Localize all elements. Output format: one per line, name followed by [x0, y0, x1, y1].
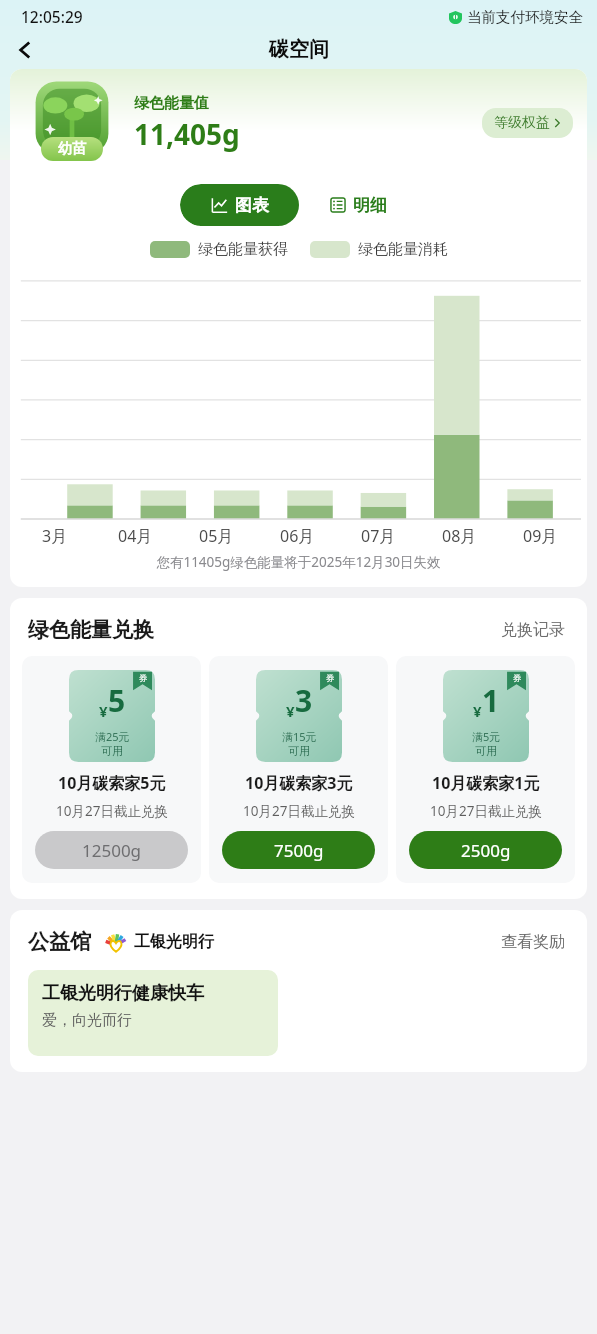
staticText: 您有11405g绿色能量将于2025年12月30日失效 — [10, 553, 587, 571]
staticText: 09月 — [523, 525, 558, 547]
button[interactable]: 7500g — [222, 831, 375, 869]
button[interactable]: 明细 — [299, 184, 418, 226]
staticText: 11,405g — [134, 115, 240, 153]
staticText: 可用 — [288, 744, 310, 758]
button[interactable]: 图表 — [180, 184, 299, 226]
staticText: 兑换记录 — [501, 620, 565, 640]
staticText: 10月27日截止兑换 — [56, 802, 168, 820]
button[interactable]: Back — [6, 33, 46, 66]
staticText: 1 — [482, 680, 500, 721]
button[interactable]: 等级权益 — [482, 108, 573, 138]
button[interactable]: ¥ — [22, 656, 201, 883]
staticText: 3 — [295, 680, 313, 721]
staticText: 图表 — [235, 195, 269, 216]
staticText: 券 — [139, 673, 148, 684]
button[interactable]: 2500g — [409, 831, 562, 869]
staticText: 3月 — [42, 525, 68, 547]
staticText: 满25元 — [95, 729, 130, 744]
staticText: 绿色能量值 — [134, 94, 209, 113]
staticText: 5 — [108, 680, 126, 721]
button[interactable]: 工银光明行健康快车 — [28, 970, 278, 1056]
staticText: 工银光明行 — [134, 932, 214, 952]
staticText: 10月碳索家5元 — [58, 772, 166, 794]
staticText: 绿色能量获得 — [198, 240, 288, 259]
staticText: 05月 — [199, 525, 234, 547]
staticText: 绿色能量消耗 — [358, 240, 448, 259]
staticText: 2500g — [461, 839, 511, 862]
staticText: 04月 — [118, 525, 153, 547]
staticText: ¥ — [473, 701, 482, 721]
staticText: 查看奖励 — [501, 932, 565, 952]
staticText: 满5元 — [472, 729, 501, 744]
staticText: 满15元 — [282, 729, 317, 744]
staticText: 10月碳索家3元 — [245, 772, 353, 794]
staticText: 可用 — [101, 744, 123, 758]
staticText: 12500g — [82, 839, 142, 862]
staticText: 工银光明行健康快车 — [42, 982, 204, 1005]
staticText: 7500g — [274, 839, 324, 862]
staticText: 爱，向光而行 — [42, 1011, 132, 1030]
staticText: 绿色能量兑换 — [28, 617, 154, 643]
staticText: 碳空间 — [269, 37, 329, 62]
staticText: 10月碳索家1元 — [432, 772, 540, 794]
staticText: 券 — [513, 673, 522, 684]
staticText: 12:05:29 — [21, 6, 83, 27]
staticText: 当前支付环境安全 — [467, 8, 583, 26]
button[interactable]: 查看奖励 — [497, 928, 569, 956]
button[interactable]: 12500g — [35, 831, 188, 869]
staticText: ¥ — [99, 701, 108, 721]
staticText: 等级权益 — [494, 114, 550, 132]
button[interactable]: 兑换记录 — [497, 616, 569, 644]
staticText: 08月 — [442, 525, 477, 547]
button[interactable]: ¥ — [209, 656, 388, 883]
staticText: 券 — [326, 673, 335, 684]
staticText: 10月27日截止兑换 — [430, 802, 542, 820]
staticText: 10月27日截止兑换 — [243, 802, 355, 820]
staticText: 07月 — [361, 525, 396, 547]
button[interactable]: ¥ — [396, 656, 575, 883]
staticText: ¥ — [286, 701, 295, 721]
staticText: 06月 — [280, 525, 315, 547]
staticText: 明细 — [353, 195, 387, 216]
staticText: 可用 — [475, 744, 497, 758]
staticText: 公益馆 — [28, 929, 91, 955]
staticText: 幼苗 — [58, 140, 86, 158]
